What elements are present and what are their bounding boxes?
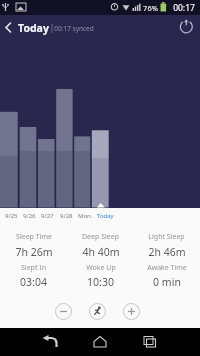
button[interactable]: 9/27 xyxy=(35,209,59,222)
staticText: Mon. xyxy=(78,212,93,220)
button[interactable]: 9/25 xyxy=(0,209,23,222)
staticText: 9/27 xyxy=(41,212,54,220)
button[interactable] xyxy=(85,328,115,356)
staticText: Sleep Time xyxy=(16,232,52,242)
button[interactable] xyxy=(55,303,72,320)
button[interactable] xyxy=(89,303,106,320)
staticText: 00:17 synced xyxy=(54,24,94,33)
button[interactable] xyxy=(176,16,197,37)
staticText: 03:04 xyxy=(20,275,47,289)
staticText: Slept In xyxy=(21,263,46,273)
staticText: 10:30 xyxy=(87,275,114,289)
staticText: 00:17 xyxy=(173,2,195,14)
button[interactable]: 9/26 xyxy=(17,209,41,222)
staticText: Deep Sleep xyxy=(82,232,119,242)
staticText: 9/26 xyxy=(23,212,36,220)
staticText: 0 min xyxy=(153,275,181,289)
button[interactable] xyxy=(35,328,65,356)
button[interactable]: Mon. xyxy=(73,209,97,222)
button[interactable]: 9/28 xyxy=(54,209,78,222)
staticText: Today xyxy=(97,212,114,220)
staticText: Today xyxy=(18,21,49,35)
staticText: 9/28 xyxy=(60,212,73,220)
staticText: 7h 26m xyxy=(15,245,53,259)
button[interactable] xyxy=(123,303,140,320)
staticText: 76% xyxy=(143,3,158,13)
button[interactable]: Today xyxy=(93,209,117,222)
staticText: Awake Time xyxy=(147,263,187,273)
staticText: 2h 46m xyxy=(148,245,186,259)
staticText: Woke Up xyxy=(86,263,116,273)
button[interactable] xyxy=(135,328,165,356)
button[interactable] xyxy=(0,15,52,40)
staticText: 9/25 xyxy=(5,212,18,220)
staticText: 4h 40m xyxy=(82,245,120,259)
staticText: Light Sleep xyxy=(148,232,185,242)
